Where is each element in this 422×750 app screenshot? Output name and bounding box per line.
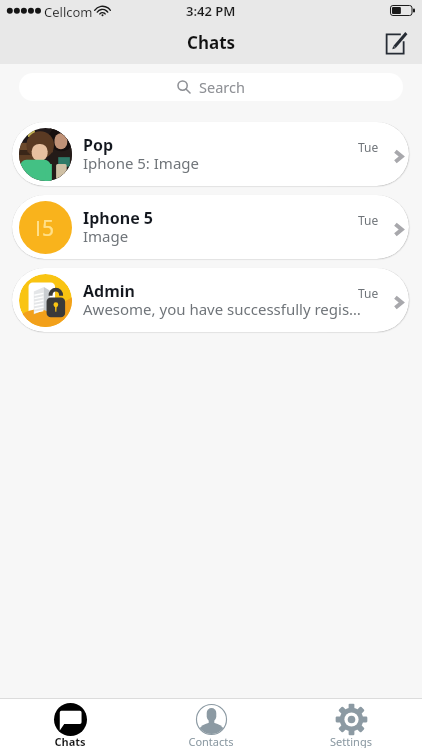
staticText: 5 [42,214,55,243]
staticText: 3:42 PM [186,2,236,20]
staticText: Pop [83,134,114,156]
button[interactable]: 5 [12,195,409,259]
button[interactable]: Chats [17,699,123,750]
staticText: Search [199,77,245,97]
button[interactable]: Admin [12,268,409,332]
staticText: Iphone 5 [83,207,154,229]
staticText: Admin [83,280,135,302]
button[interactable]: Settings [298,699,404,750]
button[interactable]: Search [19,73,403,101]
staticText: Image [83,226,383,246]
staticText: Iphone 5: Image [83,153,383,173]
staticText: Settings [330,734,372,748]
button[interactable]: Pop [12,122,409,186]
button[interactable]: Contacts [158,699,264,750]
staticText: Contacts [188,734,234,748]
staticText: Cellcom [44,3,93,21]
staticText: Tue [358,139,379,155]
staticText: Chats [54,734,86,748]
staticText: Awesome, you have successfully regis… [83,299,383,319]
staticText: Tue [358,285,379,301]
button[interactable]: Compose new message [378,24,416,62]
staticText: Chats [187,31,236,54]
staticText: Tue [358,212,379,228]
